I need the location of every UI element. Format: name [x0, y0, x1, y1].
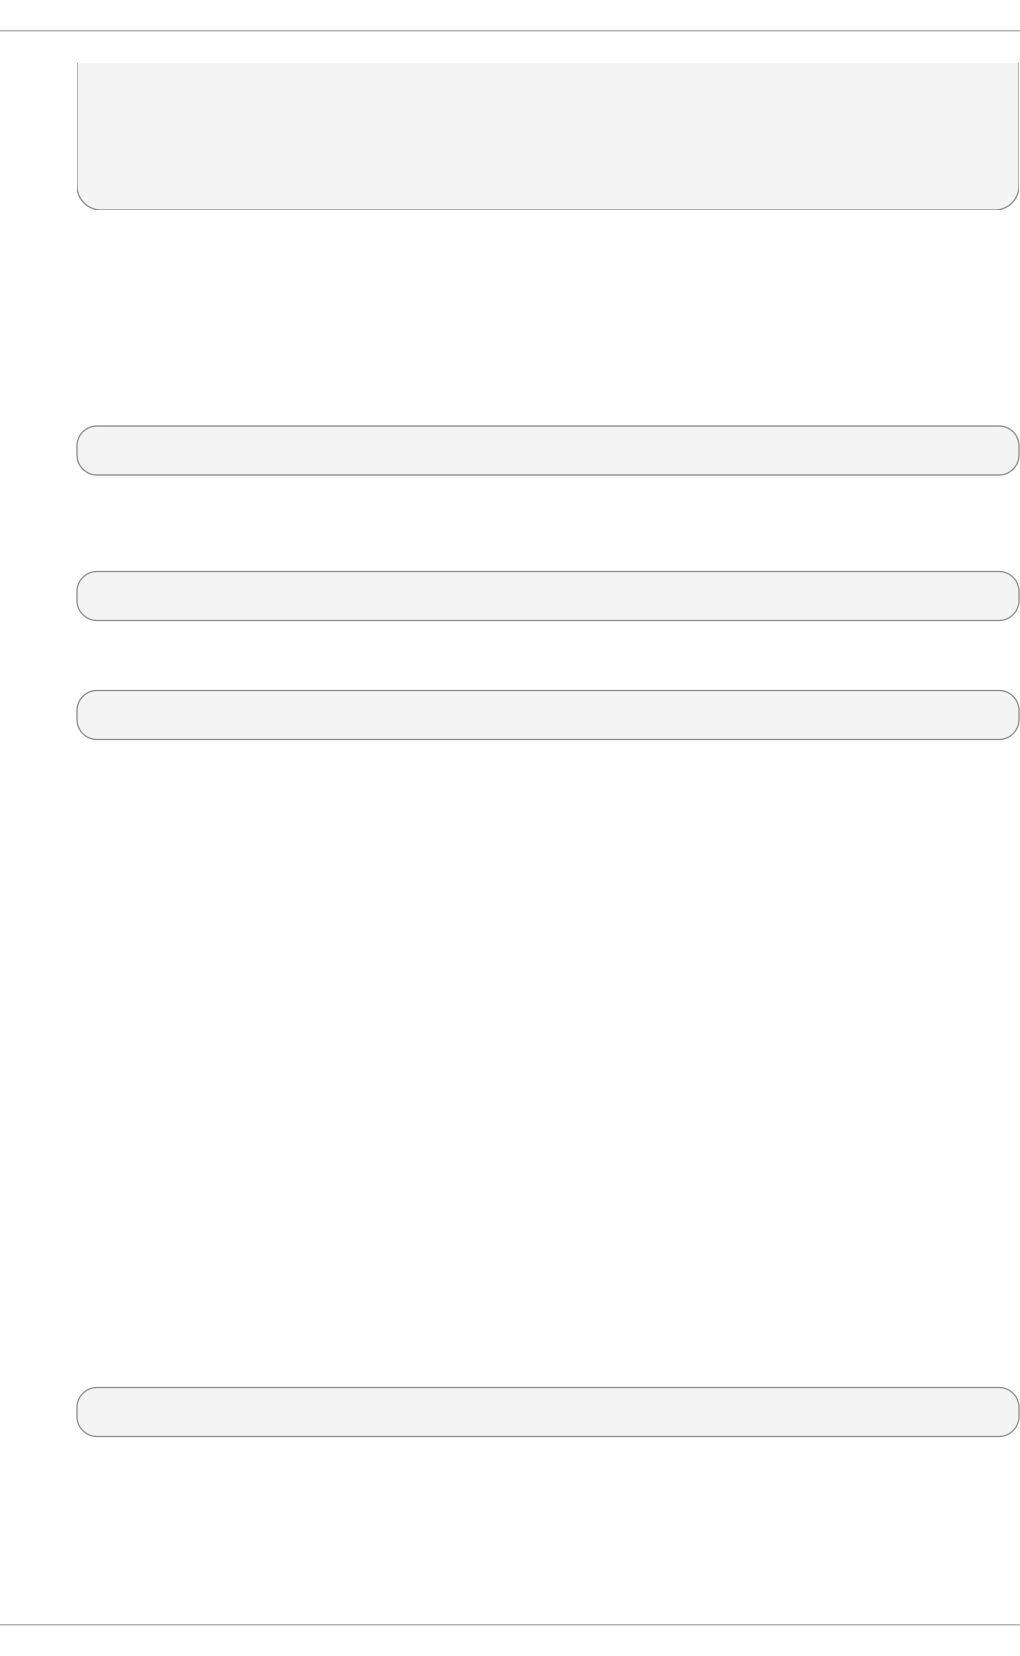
- button[interactable]: Loading item 2: [77, 571, 1019, 620]
- button[interactable]: Loading item 1: [77, 426, 1019, 475]
- button[interactable]: Loading item 4: [77, 1387, 1019, 1436]
- button[interactable]: Loading item 3: [77, 690, 1019, 739]
- button[interactable]: Loading header card: [77, 63, 1019, 210]
